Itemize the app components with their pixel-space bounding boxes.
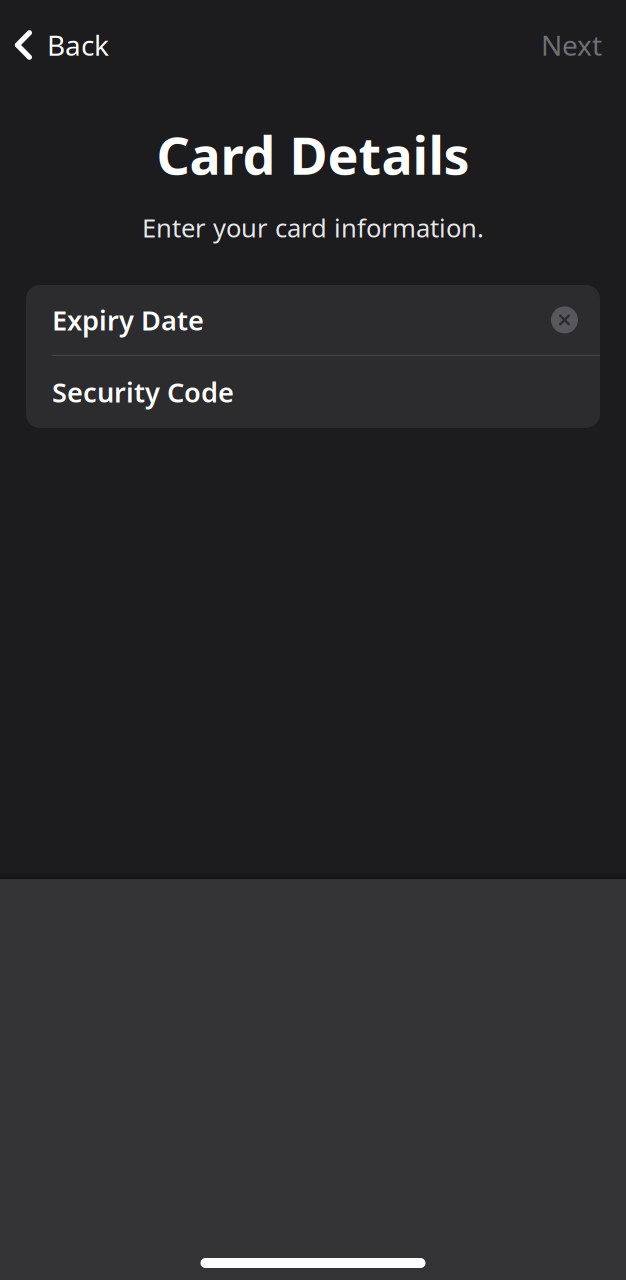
button[interactable]: Back <box>0 14 109 76</box>
button[interactable]: Security Code <box>26 356 600 428</box>
staticText: Next <box>541 26 602 64</box>
staticText: Expiry Date <box>52 301 204 338</box>
staticText: Back <box>47 26 109 64</box>
staticText: Card Details <box>156 120 469 189</box>
button[interactable]: Clear text <box>551 306 578 333</box>
staticText: Security Code <box>52 373 234 410</box>
button[interactable]: Next <box>541 14 626 76</box>
staticText: Enter your card information. <box>142 210 484 245</box>
button[interactable]: Expiry Date <box>26 285 600 355</box>
